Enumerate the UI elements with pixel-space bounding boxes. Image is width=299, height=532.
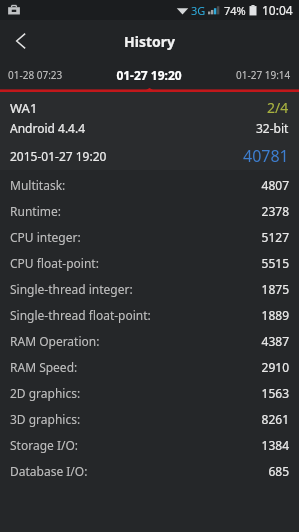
staticText: Storage I/O:	[10, 437, 79, 453]
staticText: CPU integer:	[10, 229, 81, 245]
staticText: History	[124, 32, 176, 51]
staticText: RAM Operation:	[10, 333, 100, 349]
staticText: 2910	[261, 359, 289, 375]
staticText: 01-27 19:20	[116, 67, 182, 83]
staticText: 01-27 19:14	[236, 68, 291, 82]
staticText: 74%	[224, 3, 246, 18]
staticText: 10:04	[262, 2, 293, 18]
staticText: 2/4	[267, 98, 289, 117]
staticText: 3D graphics:	[10, 411, 81, 427]
staticText: 2015-01-27 19:20	[10, 148, 107, 164]
staticText: 3G	[191, 3, 206, 18]
button[interactable]: 2D graphics:	[0, 380, 299, 406]
staticText: Android 4.4.4	[10, 120, 86, 136]
button[interactable]: Single-thread integer:	[0, 276, 299, 302]
staticText: 32-bit	[256, 120, 289, 136]
staticText: 4807	[261, 177, 289, 193]
staticText: Database I/O:	[10, 463, 88, 479]
staticText: Single-thread integer:	[10, 281, 133, 297]
button[interactable]: WA1	[0, 92, 299, 170]
button[interactable]: Multitask:	[0, 172, 299, 198]
staticText: RAM Speed:	[10, 359, 78, 375]
staticText: WA1	[10, 99, 38, 117]
staticText: 2D graphics:	[10, 385, 81, 401]
button[interactable]: Single-thread float-point:	[0, 302, 299, 328]
staticText: 1563	[261, 385, 289, 401]
staticText: 5515	[261, 255, 289, 271]
staticText: 8261	[261, 411, 289, 427]
staticText: Multitask:	[10, 177, 66, 193]
button[interactable]: CPU integer:	[0, 224, 299, 250]
staticText: 1889	[261, 307, 289, 323]
button[interactable]: 01-27 19:14	[199, 62, 299, 88]
button[interactable]: CPU float-point:	[0, 250, 299, 276]
staticText: 5127	[261, 229, 289, 245]
button[interactable]: 3D graphics:	[0, 406, 299, 432]
button[interactable]: RAM Speed:	[0, 354, 299, 380]
button[interactable]: Storage I/O:	[0, 432, 299, 458]
staticText: 4387	[261, 333, 289, 349]
button[interactable]: 01-28 07:23	[0, 62, 99, 88]
staticText: 40781	[243, 145, 289, 167]
button[interactable]: Database I/O:	[0, 458, 299, 484]
staticText: CPU float-point:	[10, 255, 99, 271]
staticText: 1875	[261, 281, 289, 297]
button[interactable]: 01-27 19:20	[99, 62, 199, 88]
staticText: Runtime:	[10, 203, 61, 219]
staticText: 1384	[261, 437, 289, 453]
staticText: 2378	[261, 203, 289, 219]
button[interactable]: Runtime:	[0, 198, 299, 224]
staticText: 685	[268, 463, 289, 479]
staticText: Single-thread float-point:	[10, 307, 151, 323]
staticText: 01-28 07:23	[8, 68, 63, 82]
button[interactable]: Back	[0, 20, 42, 62]
button[interactable]: RAM Operation:	[0, 328, 299, 354]
